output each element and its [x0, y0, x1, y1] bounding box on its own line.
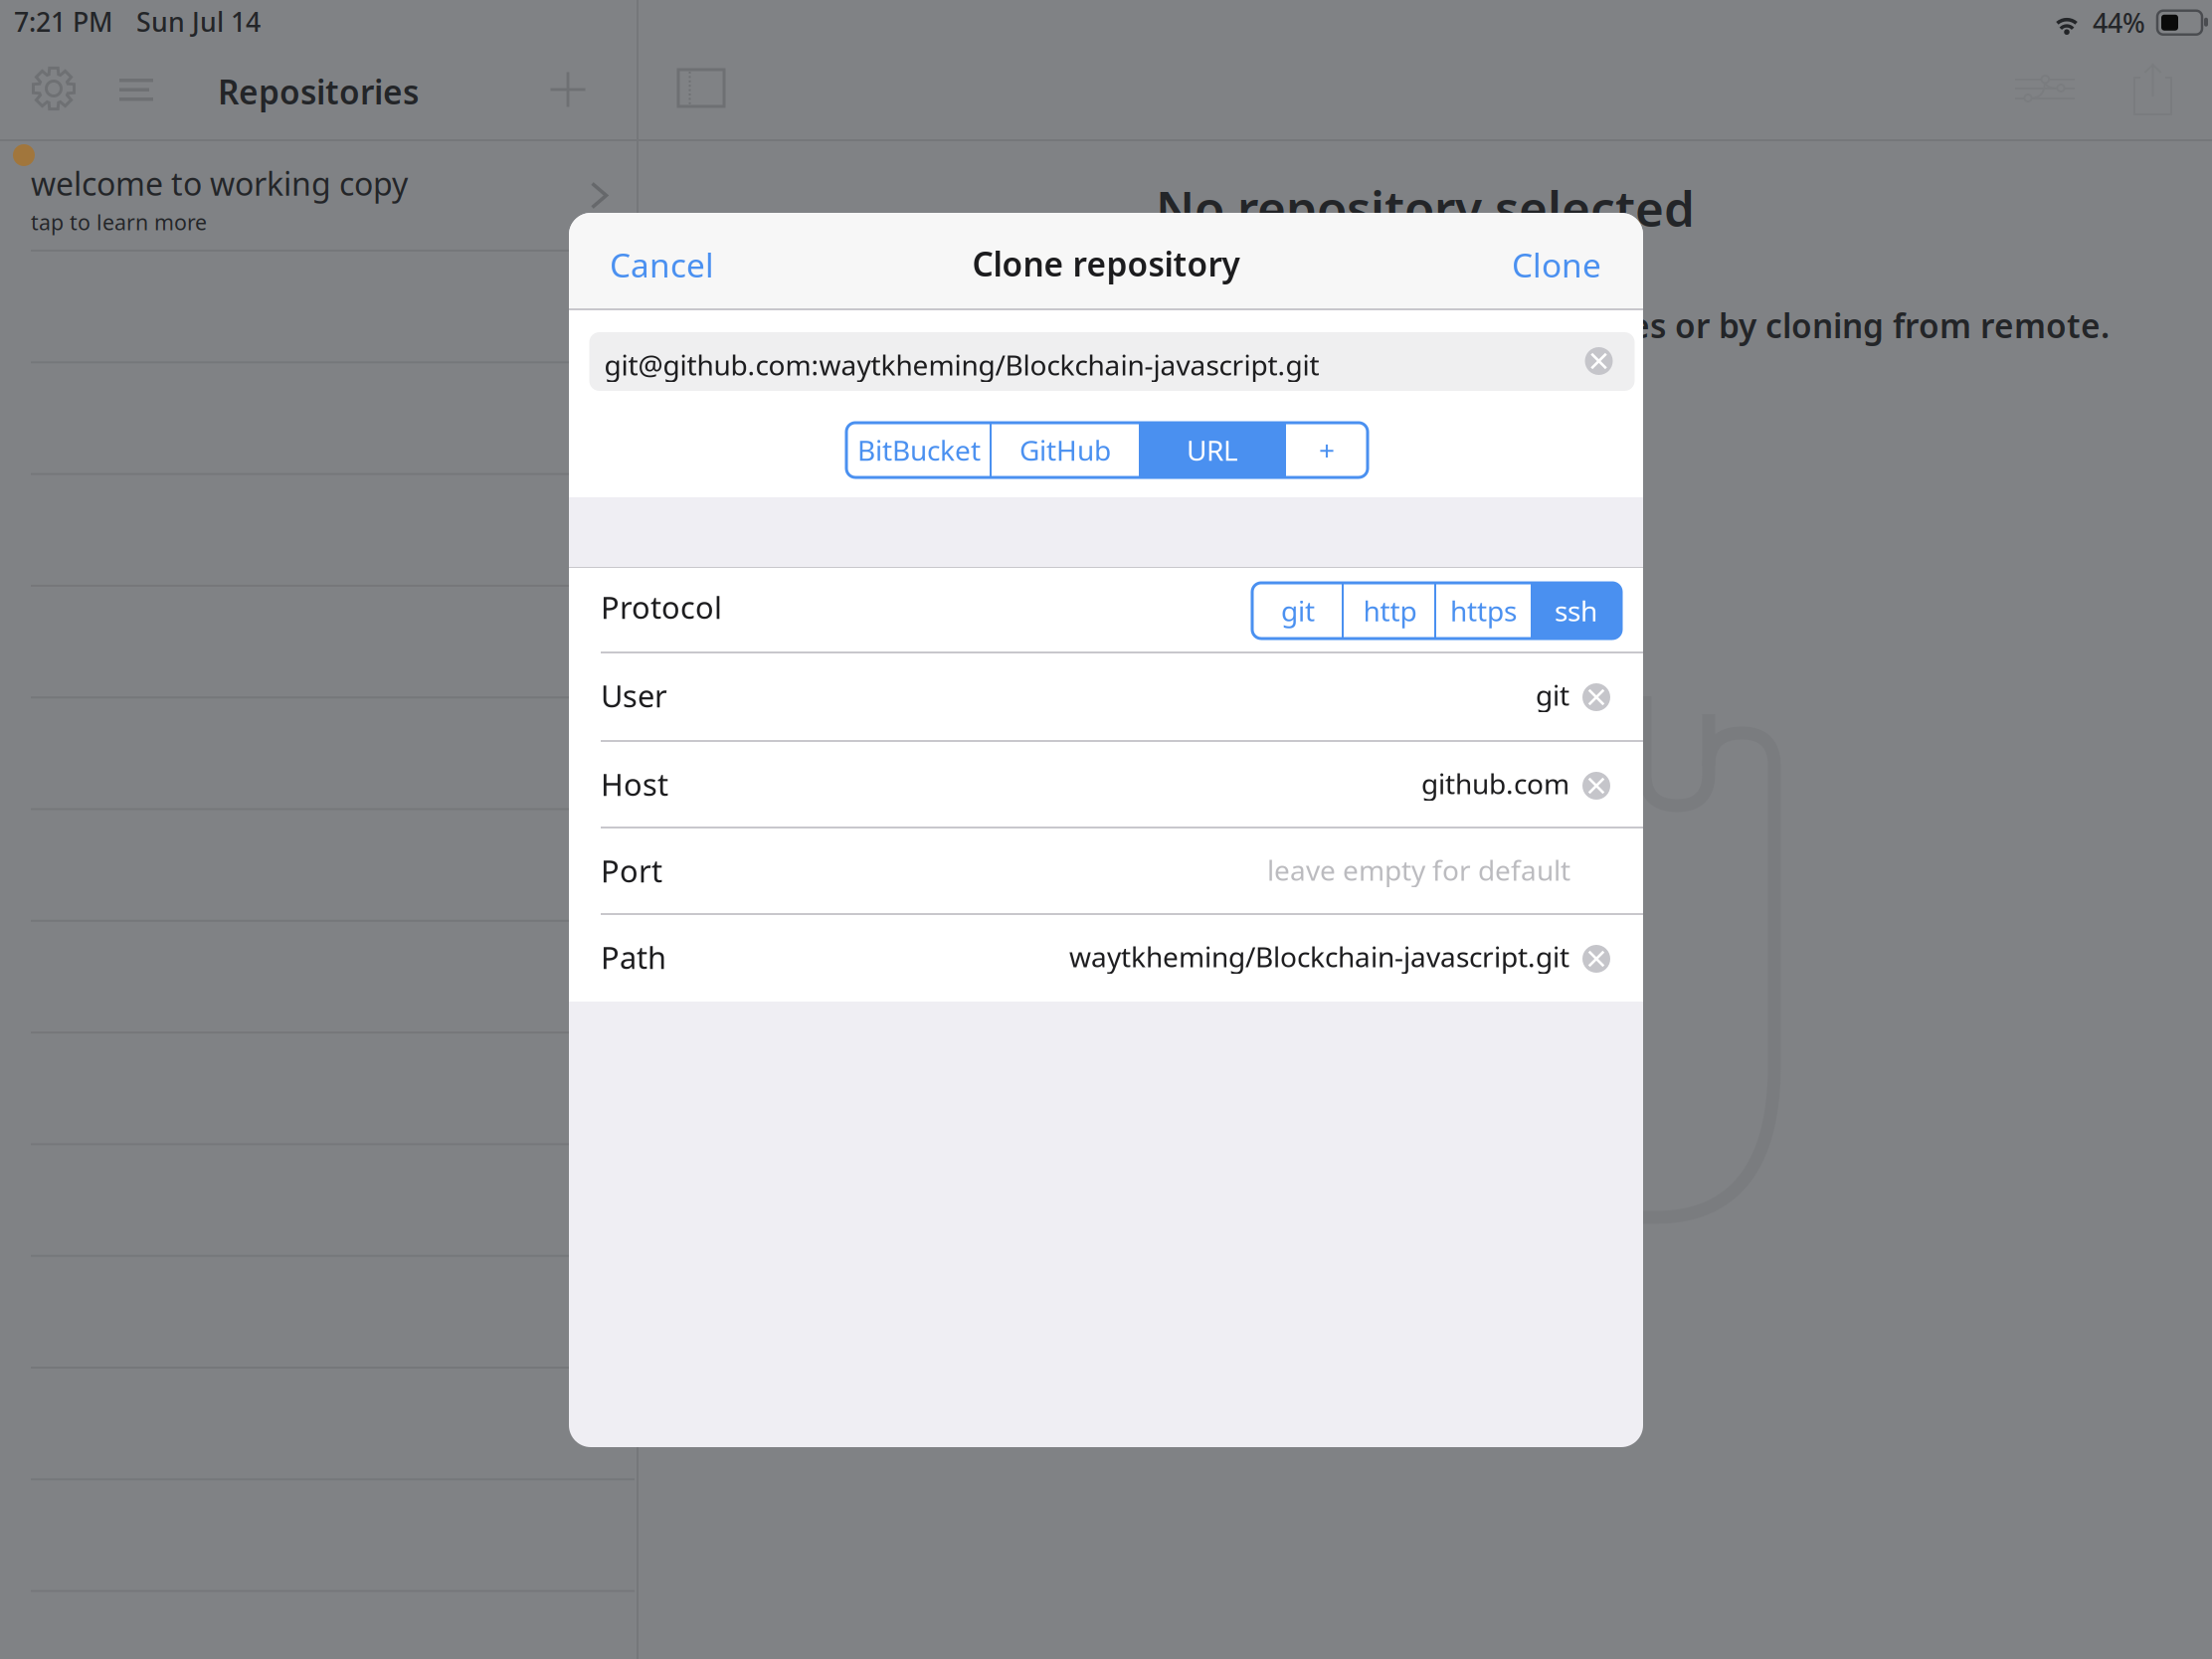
staticText: git@github.com:waytkheming/Blockchain-ja…: [604, 346, 1319, 383]
button[interactable]: Add repository: [543, 65, 593, 114]
staticText: http: [1363, 592, 1417, 629]
button[interactable]: Toggle sidebar: [678, 70, 724, 106]
staticText: URL: [1187, 432, 1238, 469]
staticText: waytkheming/Blockchain-javascript.git: [1069, 938, 1569, 975]
button[interactable]: Cancel: [610, 243, 714, 287]
button[interactable]: +: [1286, 423, 1368, 477]
button[interactable]: Settings: [26, 61, 82, 116]
staticText: leave empty for default: [1267, 851, 1570, 888]
staticText: git: [1281, 592, 1315, 629]
staticText: Clone: [1512, 243, 1601, 287]
button[interactable]: ssh: [1531, 583, 1621, 639]
staticText: +: [1319, 432, 1335, 469]
staticText: GitHub: [1019, 432, 1111, 469]
button[interactable]: https: [1436, 583, 1531, 639]
staticText: User: [601, 675, 667, 716]
staticText: Create repositories by adding local file…: [1026, 303, 2110, 347]
staticText: Protocol: [601, 587, 722, 627]
staticText: git: [1536, 676, 1569, 713]
staticText: Port: [601, 850, 662, 891]
staticText: Path: [601, 937, 666, 977]
button[interactable]: Menu: [119, 62, 169, 115]
staticText: BitBucket: [857, 432, 981, 469]
staticText: 44%: [2093, 5, 2145, 40]
button[interactable]: GitHub: [992, 423, 1139, 477]
staticText: https: [1450, 592, 1517, 629]
staticText: tap to learn more: [31, 208, 207, 236]
staticText: Cancel: [610, 243, 714, 287]
staticText: Repositories: [218, 70, 419, 114]
staticText: ssh: [1555, 592, 1597, 629]
staticText: Sun Jul 14: [136, 4, 261, 39]
button[interactable]: URL: [1139, 423, 1286, 477]
staticText: 7:21 PM: [14, 4, 112, 39]
staticText: Host: [601, 764, 668, 804]
staticText: Clone repository: [972, 242, 1240, 286]
staticText: welcome to working copy: [31, 162, 408, 204]
button[interactable]: git: [1252, 583, 1344, 639]
button[interactable]: http: [1344, 583, 1436, 639]
staticText: github.com: [1421, 765, 1569, 802]
button[interactable]: welcome to working copy: [0, 139, 635, 250]
staticText: No repository selected: [1156, 175, 1695, 240]
button[interactable]: BitBucket: [846, 423, 992, 477]
